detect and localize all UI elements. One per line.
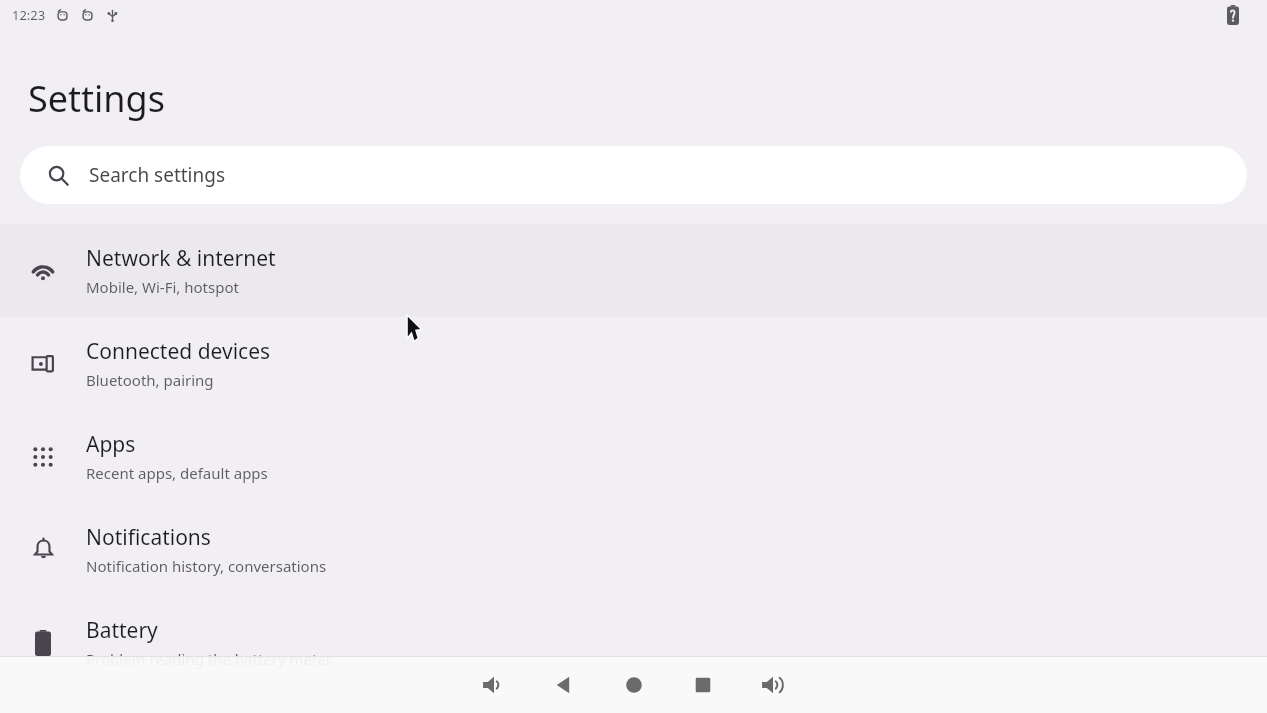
button[interactable]: Apps <box>0 410 1267 503</box>
button[interactable]: Network & internet <box>0 224 1267 317</box>
button[interactable]: Volume up <box>749 661 797 709</box>
staticText: 12:23 <box>12 6 46 24</box>
staticText: Notifications <box>86 523 211 552</box>
button[interactable]: Recent apps <box>679 661 727 709</box>
staticText: Network & internet <box>86 244 276 273</box>
staticText: Notification history, conversations <box>86 556 327 576</box>
staticText: Battery <box>86 616 158 645</box>
staticText: Connected devices <box>86 337 271 366</box>
staticText: Settings <box>28 74 165 123</box>
staticText: Mobile, Wi-Fi, hotspot <box>86 277 239 297</box>
staticText: Problem reading the battery meter. <box>86 649 334 669</box>
staticText: Apps <box>86 430 136 459</box>
staticText: Recent apps, default apps <box>86 463 268 483</box>
button[interactable]: Back <box>540 661 588 709</box>
button[interactable]: Notifications <box>0 503 1267 596</box>
button[interactable]: Search settings <box>20 146 1247 204</box>
button[interactable]: Home <box>610 661 658 709</box>
button[interactable]: Volume down <box>470 661 518 709</box>
staticText: Search settings <box>89 162 226 188</box>
button[interactable]: Battery <box>0 596 1267 689</box>
staticText: Bluetooth, pairing <box>86 370 214 390</box>
button[interactable]: Connected devices <box>0 317 1267 410</box>
